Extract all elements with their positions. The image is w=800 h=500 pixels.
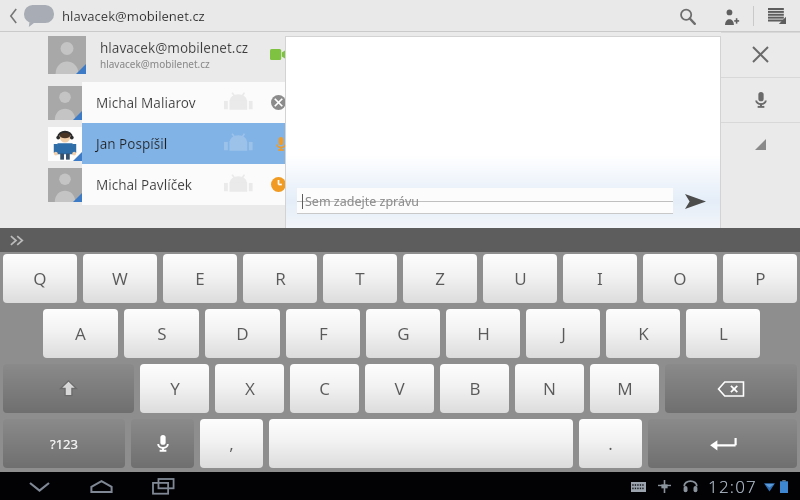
button[interactable]: Enter (648, 419, 797, 468)
button[interactable]: Y (140, 364, 209, 413)
button[interactable]: F (286, 309, 360, 358)
staticText: 12:07 (708, 475, 757, 498)
button[interactable]: E (163, 254, 237, 303)
staticText: C (319, 377, 330, 400)
button[interactable]: Hide keyboard (0, 228, 34, 252)
button[interactable]: R (243, 254, 317, 303)
staticText: U (514, 267, 527, 290)
button[interactable]: Add contact (709, 0, 753, 32)
button[interactable]: G (366, 309, 440, 358)
staticText: J (561, 322, 566, 345)
staticText: A (75, 322, 86, 345)
button[interactable]: Home (78, 472, 124, 500)
button[interactable]: D (205, 309, 280, 358)
staticText: Sem zadejte zprávu (305, 193, 420, 210)
staticText: K (638, 322, 649, 345)
staticText: F (319, 322, 328, 345)
button[interactable]: V (365, 364, 434, 413)
button[interactable]: Up (0, 0, 62, 32)
staticText: G (397, 322, 410, 345)
button[interactable]: Search (665, 0, 709, 32)
staticText: . (608, 432, 613, 455)
button[interactable]: Back (16, 472, 62, 500)
button[interactable]: Backspace (665, 364, 797, 413)
staticText: L (719, 322, 728, 345)
staticText: Q (33, 267, 47, 290)
staticText: S (157, 322, 167, 345)
button[interactable]: I (563, 254, 637, 303)
staticText: hlavacek@mobilenet.cz (62, 7, 205, 25)
button[interactable]: Jan Pospíšil (0, 123, 300, 164)
staticText: P (755, 267, 766, 290)
button[interactable]: Voice input (721, 77, 800, 122)
staticText: B (469, 377, 481, 400)
button[interactable]: J (526, 309, 600, 358)
staticText: E (195, 267, 205, 290)
button[interactable]: Q (3, 254, 77, 303)
button[interactable]: T (323, 254, 397, 303)
staticText: M (617, 377, 633, 400)
staticText: Z (435, 267, 445, 290)
button[interactable]: S (124, 309, 199, 358)
staticText: Y (170, 377, 180, 400)
button[interactable]: Recent apps (140, 472, 186, 500)
staticText: R (275, 267, 286, 290)
button[interactable]: H (446, 309, 520, 358)
staticText: hlavacek@mobilenet.cz (100, 57, 210, 71)
button[interactable]: Send (673, 184, 717, 218)
staticText: Jan Pospíšil (96, 135, 168, 153)
button[interactable]: W (83, 254, 157, 303)
button[interactable]: M (590, 364, 659, 413)
staticText: Michal Maliarov (96, 94, 196, 112)
staticText: T (355, 267, 365, 290)
staticText: O (673, 267, 687, 290)
button[interactable]: Sem zadejte zprávu (297, 188, 673, 214)
staticText: D (236, 322, 249, 345)
button[interactable]: Space (269, 419, 573, 468)
button[interactable]: B (440, 364, 509, 413)
button[interactable]: O (643, 254, 717, 303)
button[interactable]: A (43, 309, 118, 358)
button[interactable]: Close chat (721, 32, 800, 77)
button[interactable]: Z (403, 254, 477, 303)
button[interactable]: N (515, 364, 584, 413)
staticText: H (477, 322, 490, 345)
staticText: V (394, 377, 405, 400)
button[interactable]: . (579, 419, 642, 468)
staticText: ?123 (50, 435, 78, 453)
button[interactable]: Michal Pavlíček (0, 164, 300, 205)
button[interactable]: X (215, 364, 284, 413)
staticText: Michal Pavlíček (96, 176, 192, 194)
button[interactable]: , (200, 419, 263, 468)
staticText: N (543, 377, 556, 400)
button[interactable]: hlavacek@mobilenet.cz (0, 32, 300, 77)
staticText: I (597, 267, 603, 290)
staticText: , (229, 432, 234, 455)
staticText: hlavacek@mobilenet.cz (100, 39, 249, 57)
button[interactable]: C (290, 364, 359, 413)
button[interactable]: K (606, 309, 680, 358)
button[interactable]: U (483, 254, 557, 303)
button[interactable]: Expand (721, 122, 800, 167)
staticText: X (245, 377, 255, 400)
button[interactable]: Michal Maliarov (0, 82, 300, 123)
button[interactable]: P (723, 254, 797, 303)
button[interactable]: Shift (3, 364, 134, 413)
button[interactable]: Voice input (131, 419, 194, 468)
button[interactable]: L (686, 309, 760, 358)
staticText: W (112, 267, 128, 290)
button[interactable]: ?123 (3, 419, 125, 468)
button[interactable]: More options (754, 0, 800, 32)
